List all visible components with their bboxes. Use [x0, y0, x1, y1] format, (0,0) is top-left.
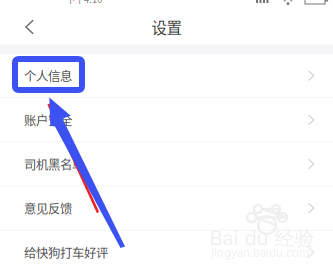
button[interactable]: 意见反馈: [0, 186, 333, 231]
staticText: 个人信息: [24, 67, 72, 85]
button[interactable]: 给快狗打车好评: [0, 231, 333, 271]
button[interactable]: 账户安全: [0, 98, 333, 142]
staticText: 设置: [151, 16, 181, 38]
button[interactable]: Back: [0, 11, 48, 43]
staticText: 司机黑名单: [24, 155, 84, 173]
staticText: 下午4:16: [66, 0, 102, 6]
staticText: 账户安全: [24, 111, 72, 129]
button[interactable]: 个人信息: [0, 54, 333, 98]
staticText: 意见反馈: [24, 199, 72, 217]
button[interactable]: 司机黑名单: [0, 142, 333, 186]
staticText: 给快狗打车好评: [24, 243, 108, 261]
staticText: Bai du 经验: [209, 226, 314, 251]
staticText: jingyan.baidu.com: [211, 246, 309, 260]
